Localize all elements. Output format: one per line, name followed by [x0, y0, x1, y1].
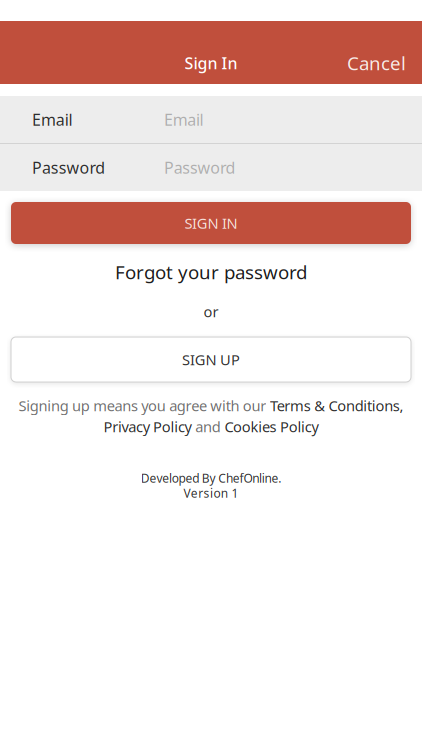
staticText: Password [164, 157, 236, 178]
staticText: Privacy Policy [103, 417, 192, 436]
staticText: Version 1 [183, 485, 239, 501]
staticText: or [203, 302, 218, 321]
button[interactable]: Cancel [331, 43, 422, 83]
staticText: Cookies Policy [224, 417, 318, 436]
button[interactable]: Forgot your password [115, 260, 307, 284]
staticText: Signing up means you agree with our [18, 396, 270, 415]
button[interactable]: Terms & Conditions, [270, 396, 404, 415]
button[interactable]: SIGN UP [11, 337, 411, 382]
staticText: SIGN UP [182, 350, 240, 369]
staticText: Sign In [184, 52, 237, 74]
staticText: Email [164, 109, 204, 130]
button[interactable]: Password [0, 144, 422, 191]
staticText: SIGN IN [184, 213, 238, 233]
button[interactable]: SIGN IN [11, 202, 411, 244]
staticText: and [192, 417, 224, 436]
button[interactable]: Privacy Policy [103, 417, 192, 436]
staticText: Developed By ChefOnline. [141, 470, 281, 486]
staticText: Cancel [347, 51, 406, 75]
staticText: Password [32, 157, 105, 178]
staticText: Terms & Conditions, [270, 396, 404, 415]
button[interactable]: Email [0, 96, 422, 143]
staticText: Email [32, 109, 73, 130]
staticText: Forgot your password [115, 260, 307, 284]
button[interactable]: Cookies Policy [224, 417, 318, 436]
